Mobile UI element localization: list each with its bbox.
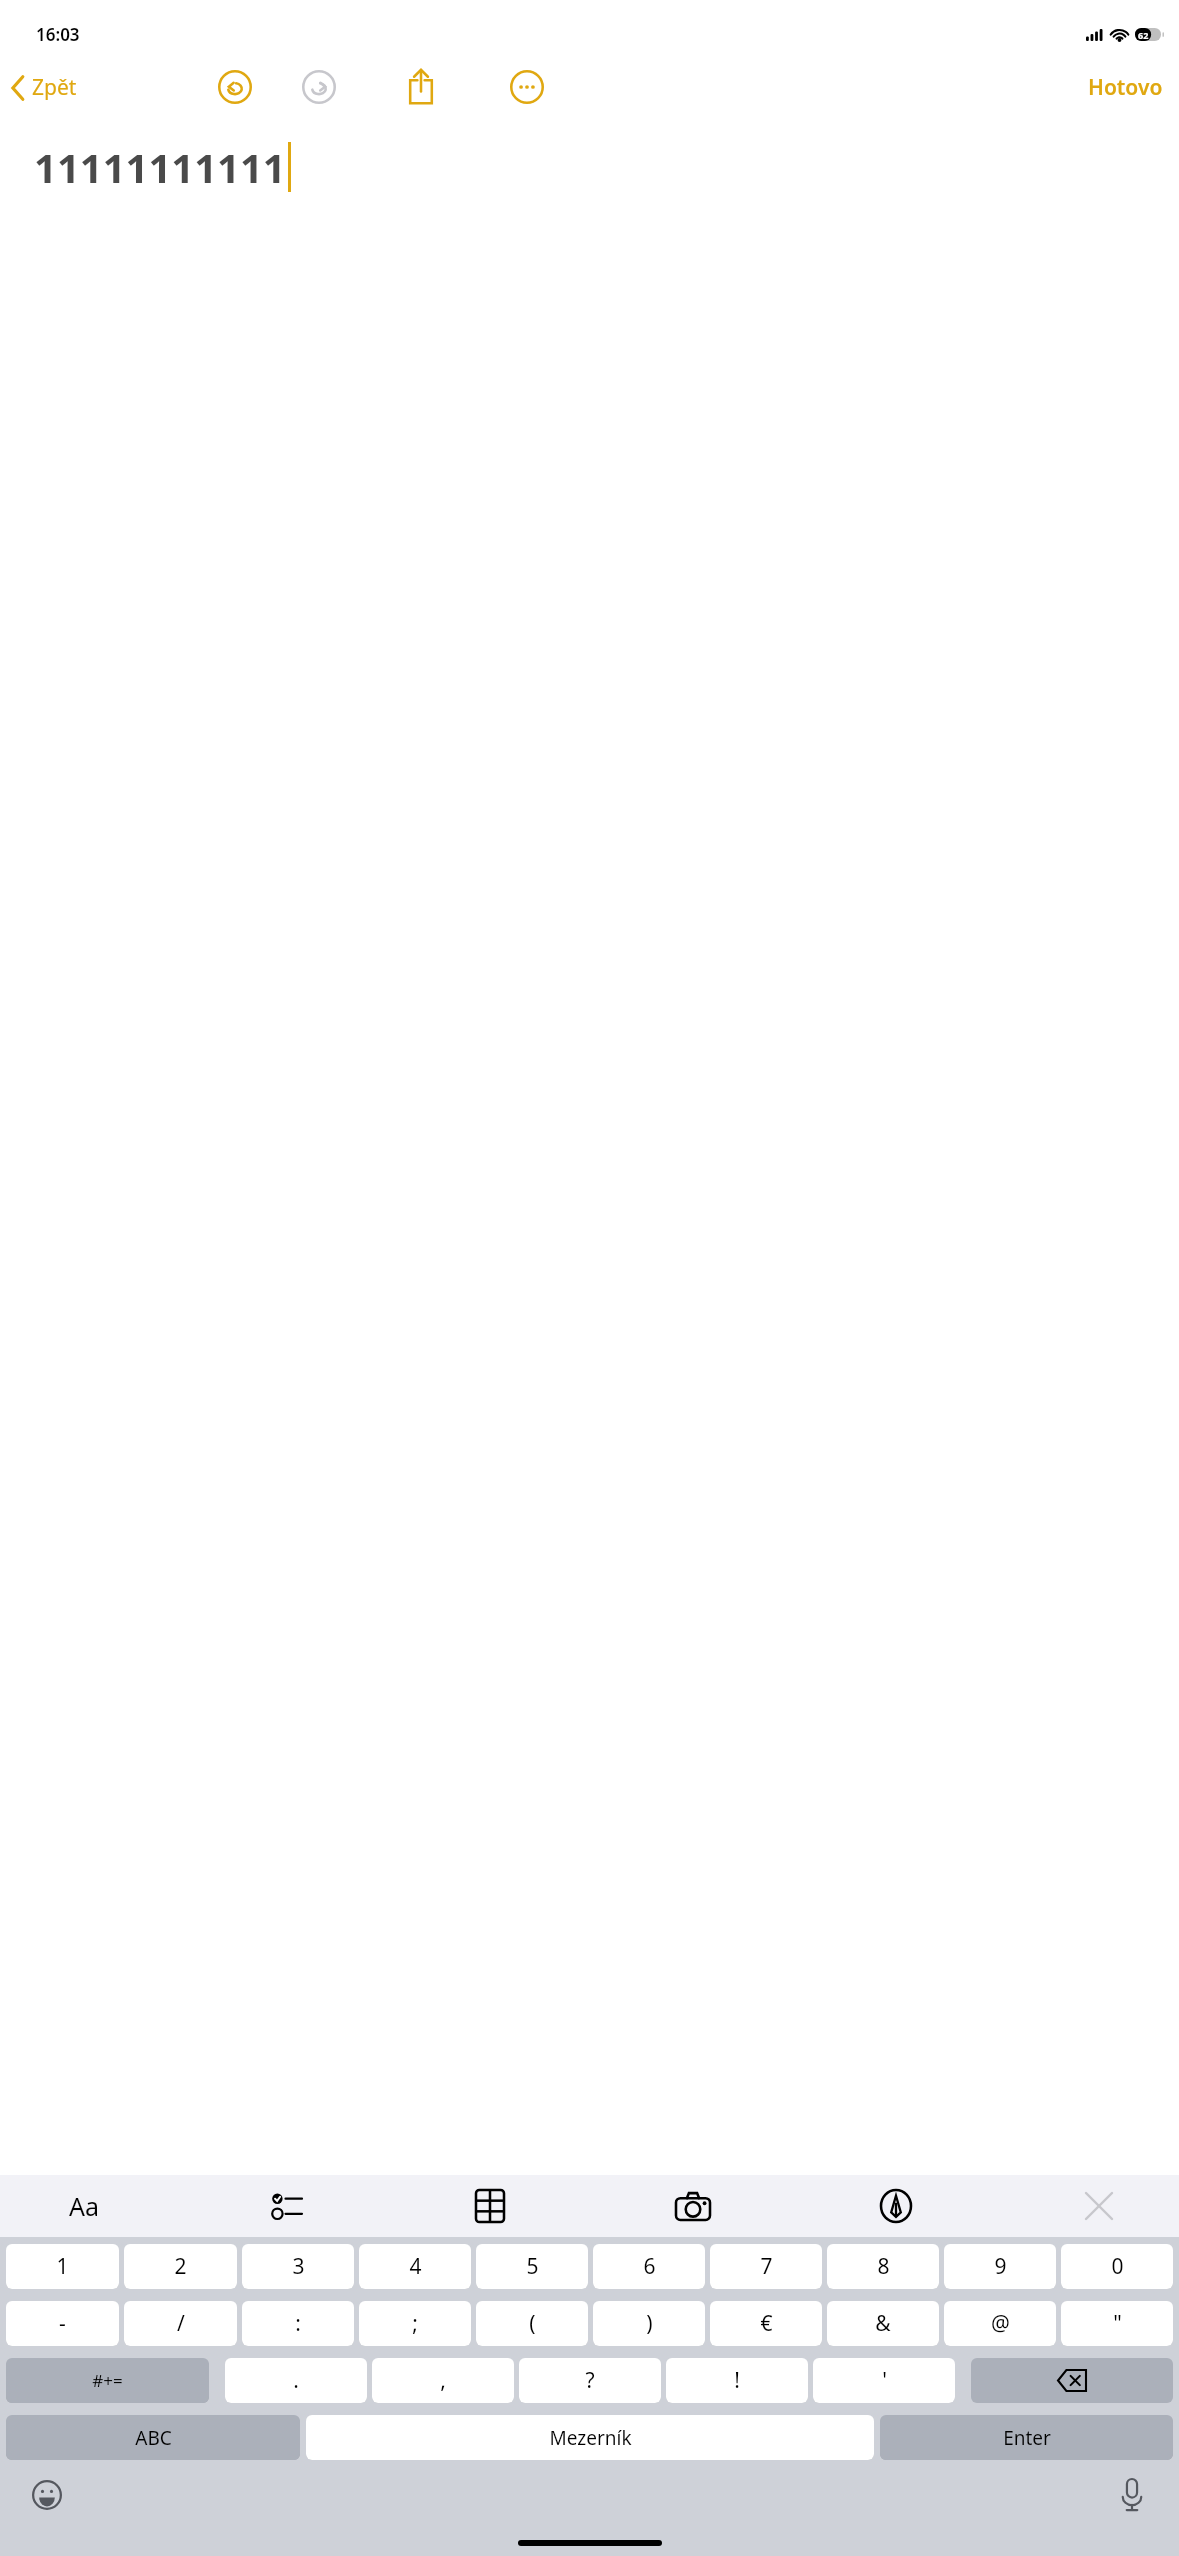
staticText: 9	[994, 2252, 1007, 2281]
staticText: 1	[56, 2252, 69, 2281]
button[interactable]: 5	[476, 2244, 588, 2289]
button[interactable]: Undo	[208, 60, 262, 114]
staticText: )	[646, 2309, 653, 2338]
button[interactable]: Enter	[880, 2415, 1173, 2460]
button[interactable]: &	[827, 2301, 939, 2346]
staticText: 7	[760, 2252, 773, 2281]
staticText: 3	[292, 2252, 305, 2281]
button[interactable]: 4	[359, 2244, 471, 2289]
staticText: ;	[412, 2309, 418, 2338]
button[interactable]: €	[710, 2301, 822, 2346]
staticText: Mezerník	[549, 2425, 632, 2451]
button[interactable]: Format text	[58, 2180, 110, 2232]
button[interactable]: 1	[6, 2244, 119, 2289]
staticText: ?	[585, 2366, 595, 2395]
button[interactable]: 6	[593, 2244, 705, 2289]
staticText: @	[991, 2309, 1010, 2338]
staticText: Zpět	[32, 73, 77, 102]
staticText: ,	[440, 2366, 446, 2395]
button[interactable]: More options	[500, 60, 554, 114]
button[interactable]: 8	[827, 2244, 939, 2289]
staticText: '	[882, 2366, 887, 2395]
staticText: :	[295, 2309, 301, 2338]
staticText: 4	[409, 2252, 422, 2281]
button[interactable]: Emoji	[22, 2470, 72, 2520]
staticText: Aa	[69, 2189, 100, 2223]
button[interactable]: -	[6, 2301, 119, 2346]
staticText: ABC	[135, 2425, 172, 2451]
staticText: 5	[526, 2252, 539, 2281]
staticText: !	[734, 2366, 740, 2395]
button[interactable]: 7	[710, 2244, 822, 2289]
button[interactable]: @	[944, 2301, 1056, 2346]
button[interactable]: Zpět	[0, 67, 89, 108]
button[interactable]: #+=	[6, 2358, 209, 2403]
button[interactable]: /	[124, 2301, 237, 2346]
staticText: 8	[877, 2252, 890, 2281]
staticText: 11111111111	[34, 140, 286, 194]
button[interactable]: Checklist	[261, 2180, 313, 2232]
button[interactable]: Markup	[870, 2180, 922, 2232]
button[interactable]: Close keyboard	[1073, 2180, 1125, 2232]
staticText: "	[1113, 2309, 1122, 2338]
button[interactable]: '	[813, 2358, 955, 2403]
button[interactable]: :	[242, 2301, 354, 2346]
staticText: 0	[1111, 2252, 1124, 2281]
button[interactable]: Camera	[667, 2180, 719, 2232]
staticText: .	[293, 2366, 299, 2395]
button[interactable]: 2	[124, 2244, 237, 2289]
staticText: 6	[643, 2252, 656, 2281]
button[interactable]: Share	[394, 60, 448, 114]
button[interactable]: ;	[359, 2301, 471, 2346]
staticText: (	[529, 2309, 536, 2338]
staticText: Enter	[1003, 2425, 1051, 2451]
button[interactable]: ABC	[6, 2415, 300, 2460]
staticText: &	[875, 2309, 891, 2338]
button[interactable]: 9	[944, 2244, 1056, 2289]
staticText: Hotovo	[1088, 73, 1163, 102]
staticText: /	[177, 2309, 185, 2338]
button[interactable]: Redo	[292, 60, 346, 114]
staticText: 16:03	[36, 23, 80, 46]
button[interactable]: (	[476, 2301, 588, 2346]
button[interactable]: Mezerník	[306, 2415, 874, 2460]
button[interactable]: Dictation	[1107, 2470, 1157, 2520]
button[interactable]: !	[666, 2358, 808, 2403]
button[interactable]: Hotovo	[1072, 65, 1179, 110]
button[interactable]: ,	[372, 2358, 514, 2403]
staticText: -	[59, 2309, 66, 2338]
button[interactable]: .	[225, 2358, 367, 2403]
button[interactable]: 3	[242, 2244, 354, 2289]
button[interactable]: )	[593, 2301, 705, 2346]
button[interactable]: "	[1061, 2301, 1173, 2346]
staticText: #+=	[92, 2369, 123, 2392]
staticText: 2	[174, 2252, 187, 2281]
button[interactable]: Backspace	[971, 2358, 1173, 2403]
button[interactable]: 0	[1061, 2244, 1173, 2289]
staticText: €	[760, 2309, 773, 2338]
button[interactable]: Table	[464, 2180, 516, 2232]
staticText: 62	[1138, 29, 1149, 41]
button[interactable]: ?	[519, 2358, 661, 2403]
